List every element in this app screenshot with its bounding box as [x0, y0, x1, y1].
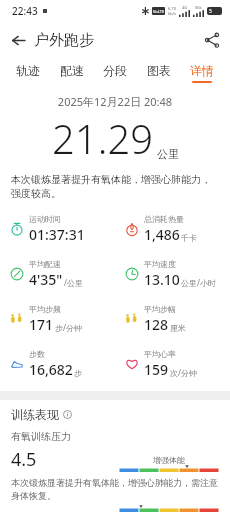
staticText: 56k [195, 5, 202, 10]
staticText: 1,486 [144, 225, 180, 244]
staticText: 步 [74, 368, 82, 378]
staticText: 公里 [157, 147, 179, 161]
staticText: 分段 [103, 63, 127, 78]
staticText: 厘米 [170, 323, 186, 333]
button[interactable]: 平均步幅 [115, 296, 230, 341]
staticText: 图表 [147, 63, 171, 78]
staticText: 平均配速 [29, 259, 61, 269]
staticText: 22:43 [12, 4, 38, 18]
button[interactable]: 平均速度 [115, 251, 230, 296]
staticText: 增强体能 [153, 455, 185, 465]
button[interactable]: 配速 [56, 61, 88, 85]
staticText: 4.5 [11, 447, 37, 472]
staticText: 运动时间 [29, 214, 61, 224]
staticText: 平均步频 [29, 304, 61, 314]
staticText: 01:37:31 [29, 225, 85, 244]
staticText: 户外跑步 [34, 31, 94, 50]
other: Back [10, 32, 27, 49]
staticText: /公里 [64, 277, 83, 288]
staticText: 步数 [29, 349, 45, 359]
button[interactable]: 运动时间 [0, 206, 115, 251]
staticText: 128 [144, 315, 169, 334]
staticText: 159 [144, 360, 169, 379]
button[interactable]: 总消耗热量 [115, 206, 230, 251]
other: Info [63, 410, 72, 419]
staticText: 本次锻炼显著提升有氧体能，增强心肺能力，需注意身体恢复。 [11, 477, 219, 501]
staticText: 4'35" [29, 270, 63, 289]
staticText: 2025年12月22日 20:48 [0, 94, 230, 109]
staticText: 配速 [60, 63, 84, 78]
button[interactable]: 步数 [0, 341, 115, 386]
staticText: 6.70 [168, 6, 176, 11]
staticText: 总消耗热量 [144, 214, 184, 224]
staticText: 千卡 [181, 233, 197, 243]
staticText: 5 [209, 8, 212, 15]
staticText: 平均心率 [144, 349, 176, 359]
button[interactable]: 平均心率 [115, 341, 230, 386]
staticText: VoLTE [153, 9, 165, 14]
staticText: 13.10 [144, 270, 180, 289]
staticText: 步/分钟 [55, 322, 82, 333]
staticText: 平均速度 [144, 259, 176, 269]
button[interactable]: 平均步频 [0, 296, 115, 341]
button[interactable]: 轨迹 [12, 61, 44, 85]
staticText: 轨迹 [16, 63, 40, 78]
staticText: 21.29 [52, 111, 154, 165]
button[interactable]: 分段 [99, 61, 131, 85]
button[interactable]: Back [0, 27, 100, 54]
button[interactable]: Share [194, 26, 230, 54]
staticText: 本次锻炼显著提升有氧体能，增强心肺能力，强度较高。 [11, 173, 219, 200]
staticText: 详情 [190, 63, 214, 78]
button[interactable]: 平均配速 [0, 251, 115, 296]
button[interactable]: 训练表现 [11, 407, 72, 422]
staticText: 平均步幅 [144, 304, 176, 314]
staticText: 训练表现 [11, 407, 59, 422]
staticText: 公里/小时 [181, 277, 216, 288]
staticText: 4G [182, 5, 188, 10]
staticText: 有氧训练压力 [11, 430, 71, 443]
button[interactable]: 图表 [143, 61, 175, 85]
button[interactable]: 详情 [186, 61, 218, 85]
staticText: kb/s [168, 11, 176, 16]
staticText: 次/分钟 [170, 367, 197, 378]
staticText: 16,682 [29, 360, 73, 379]
staticText: 171 [29, 315, 54, 334]
